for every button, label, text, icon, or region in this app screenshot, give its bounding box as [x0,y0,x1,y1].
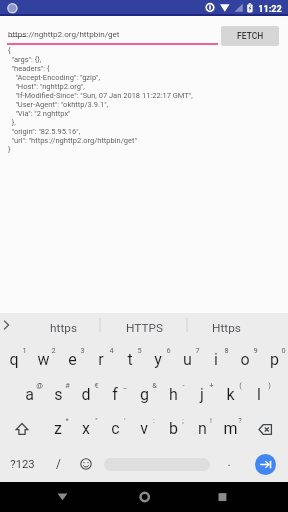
staticText: 4 [109,346,114,355]
staticText: x [82,419,90,438]
button[interactable]: t [116,343,144,375]
staticText: a [25,385,34,404]
staticText: y [154,350,162,369]
staticText: . [227,455,231,469]
staticText: d [81,385,91,404]
staticText: : [153,416,155,425]
staticText: 1 [22,346,27,355]
staticText: # [65,381,70,390]
button[interactable]: FETCH [221,26,279,46]
staticText: ! [210,416,212,425]
button[interactable]: j [188,378,216,410]
button[interactable]: y [144,343,172,375]
button[interactable]: l [245,378,273,410]
button[interactable] [7,416,37,441]
staticText: * [65,416,69,425]
staticText: m [223,419,238,438]
staticText: / [56,457,61,471]
button[interactable]: https://nghttp2.org/httpbin/get [7,23,218,44]
button[interactable]: o [231,343,259,375]
staticText: 9 [253,346,258,355]
staticText: r [98,350,104,369]
staticText: ' [124,416,126,425]
staticText: 11:22 [258,3,282,14]
button[interactable]: c [101,412,129,444]
staticText: 2 [51,346,56,355]
button[interactable]: b [159,412,187,444]
staticText: 8 [224,346,229,355]
button[interactable]: https [23,316,103,340]
staticText: t [127,350,133,369]
staticText: w [37,350,50,369]
staticText: 3 [80,346,85,355]
button[interactable]: r [87,343,115,375]
button[interactable]: m [216,412,244,444]
staticText: z [54,419,62,438]
staticText: ) [268,381,271,390]
button[interactable]: v [130,412,158,444]
button[interactable]: x [72,412,100,444]
staticText: ; [182,416,184,425]
staticText: o [240,350,250,369]
button[interactable] [75,453,97,475]
staticText: _ [123,381,127,390]
staticText: https [50,321,77,335]
staticText: - [182,381,185,390]
staticText: 0 [281,346,286,355]
button[interactable]: s [44,378,72,410]
staticText: @ [36,381,43,390]
staticText: n [198,419,207,438]
button[interactable]: n [188,412,216,444]
staticText: g [140,385,149,404]
staticText: q [9,350,19,369]
button[interactable]: d [72,378,100,410]
button[interactable]: i [202,343,230,375]
staticText: v [140,419,148,438]
button[interactable]: Https [186,316,266,340]
button[interactable] [215,484,235,504]
button[interactable]: f [101,378,129,410]
staticText: e [68,350,77,369]
staticText: Https [212,321,241,335]
staticText: c [111,419,120,438]
staticText: i [214,350,218,369]
staticText: 5 [137,346,142,355]
button[interactable] [255,454,276,475]
staticText: u [183,350,192,369]
button[interactable] [135,484,155,504]
button[interactable]: g [130,378,158,410]
staticText: HTTPS [126,321,163,335]
staticText: ?123 [10,458,35,471]
staticText: 7 [195,346,200,355]
staticText: k [226,385,235,404]
button[interactable]: p [260,343,288,375]
staticText: p [270,350,279,369]
button[interactable]: e [58,343,86,375]
button[interactable]: z [44,412,72,444]
button[interactable]: q [0,343,28,375]
button[interactable]: . [219,448,239,476]
staticText: b [169,419,178,438]
button[interactable]: k [216,378,244,410]
button[interactable] [251,416,281,441]
button[interactable]: HTTPS [104,316,184,340]
staticText: s [54,385,63,404]
staticText: j [200,385,204,404]
button[interactable]: h [159,378,187,410]
button[interactable]: u [173,343,201,375]
staticText: f [112,385,118,404]
button[interactable]: w [29,343,57,375]
staticText: l [257,385,261,404]
staticText: ? [238,416,242,425]
button[interactable]: ?123 [2,450,42,478]
button[interactable]: a [15,378,43,410]
staticText: + [209,381,214,390]
staticText: FETCH [237,31,264,41]
button[interactable]: / [46,450,70,478]
button[interactable] [52,483,72,503]
staticText: & [152,381,157,390]
staticText: ( [239,381,242,390]
staticText: 6 [166,346,171,355]
staticText: https://nghttp2.org/httpbin/get [8,29,120,38]
